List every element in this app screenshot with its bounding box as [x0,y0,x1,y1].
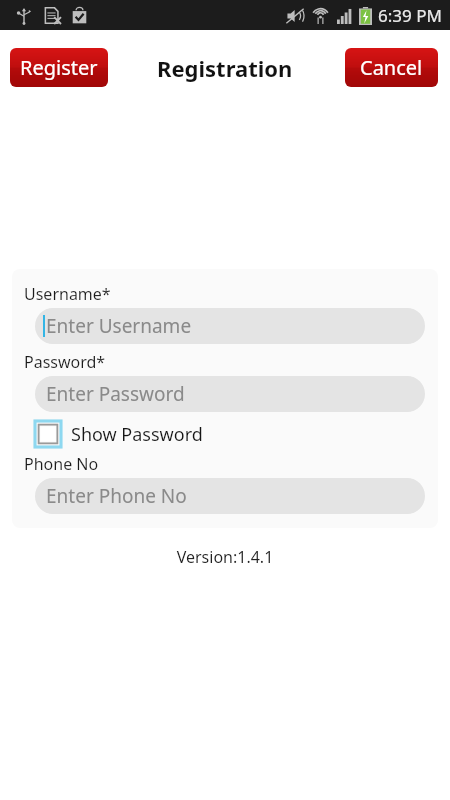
staticText: Password* [24,351,106,373]
button[interactable]: Cancel [345,48,438,87]
staticText: Username* [24,283,111,305]
staticText: Version:1.4.1 [0,546,450,568]
staticText: Enter Phone No [46,483,187,509]
staticText: Registration [157,53,293,83]
staticText: 6:39 PM [378,4,442,27]
staticText: Enter Username [46,313,192,339]
staticText: Register [20,54,98,81]
button[interactable]: Enter Phone No [35,478,425,514]
button[interactable]: Enter Password [35,376,425,412]
staticText: Show Password [71,422,203,447]
staticText: Enter Password [46,381,185,407]
button[interactable]: Enter Username [35,308,425,344]
staticText: Cancel [360,54,423,81]
button[interactable]: Show Password [35,421,203,447]
staticText: Phone No [24,453,99,475]
button[interactable]: Register [10,48,108,87]
